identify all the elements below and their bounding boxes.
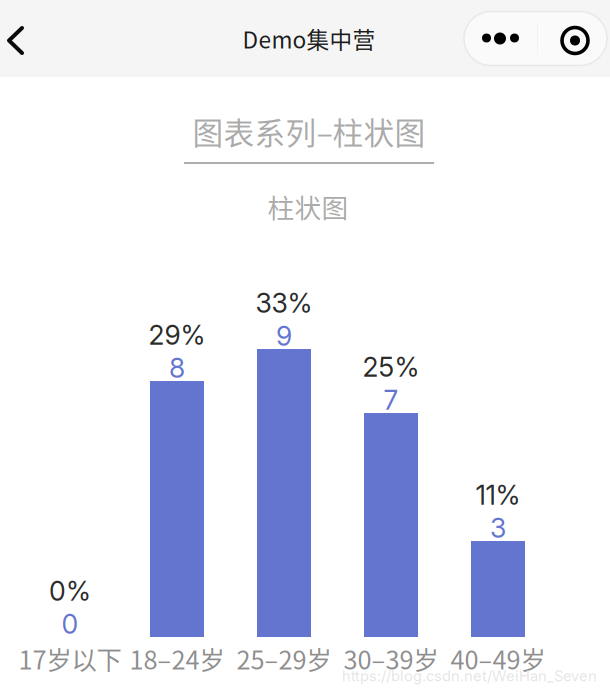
staticText: 17岁以下 [18, 640, 121, 677]
staticText: https://blog.csdn.net/WeiHan_Seven [342, 667, 597, 685]
staticText: 33% [255, 287, 312, 319]
staticText: Demo集中营 [242, 22, 375, 55]
staticText: 0 [61, 608, 78, 640]
staticText: 25% [362, 351, 419, 383]
staticText: 9 [276, 320, 292, 352]
staticText: 11% [475, 479, 520, 511]
button[interactable]: Back [0, 0, 46, 77]
staticText: 29% [148, 319, 205, 351]
staticText: 图表系列–柱状图 [192, 109, 425, 153]
staticText: 18–24岁 [129, 640, 224, 677]
button[interactable]: More options [464, 11, 607, 65]
staticText: 25–29岁 [236, 640, 331, 677]
staticText: 3 [490, 512, 506, 544]
staticText: 7 [383, 384, 398, 416]
staticText: 0% [49, 575, 91, 607]
staticText: 30–39岁 [343, 640, 438, 677]
staticText: 柱状图 [267, 187, 348, 226]
staticText: 40–49岁 [450, 640, 545, 677]
staticText: 8 [169, 352, 185, 384]
